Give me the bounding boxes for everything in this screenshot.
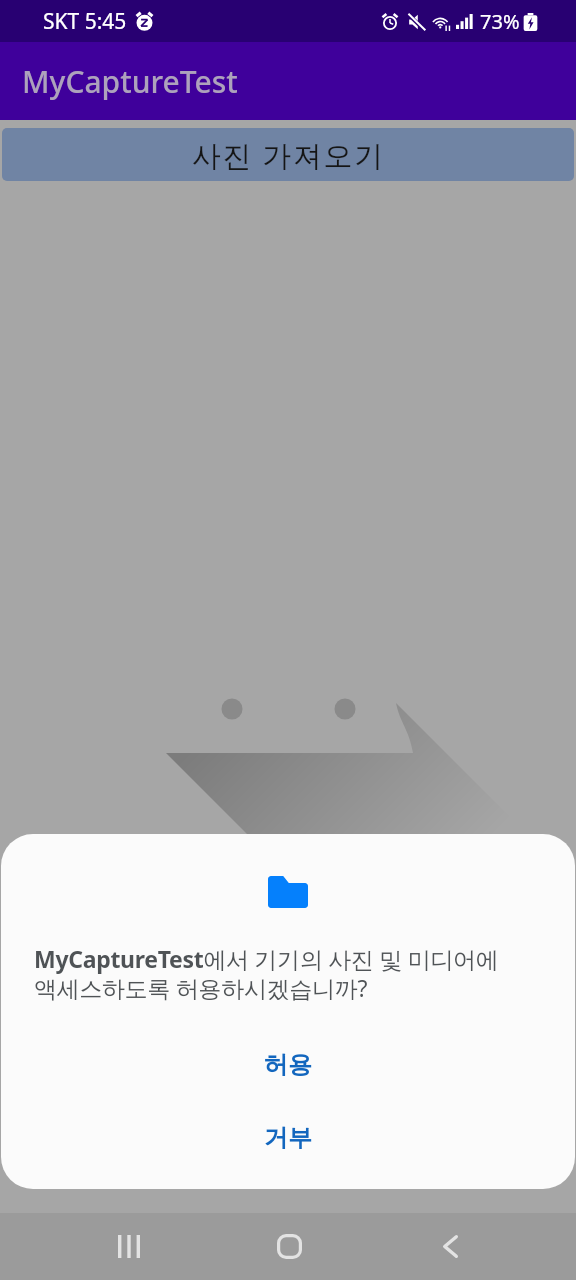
staticText: MyCaptureTest bbox=[22, 61, 238, 102]
button[interactable]: Home bbox=[209, 1213, 370, 1280]
button[interactable]: 거부 bbox=[1, 1118, 575, 1158]
staticText: 거부 bbox=[264, 1123, 312, 1153]
staticText: 허용 bbox=[264, 1050, 312, 1080]
staticText: 사진 가져오기 bbox=[192, 135, 385, 175]
button[interactable]: Recent apps bbox=[49, 1213, 209, 1280]
button[interactable]: 허용 bbox=[1, 1045, 575, 1085]
button[interactable]: 사진 가져오기 bbox=[2, 128, 574, 181]
staticText: MyCaptureTest에서 기기의 사진 및 미디어에 액세스하도록 허용하… bbox=[34, 943, 499, 1004]
button[interactable]: Back bbox=[370, 1213, 531, 1280]
staticText: 73% bbox=[480, 8, 520, 35]
staticText: SKT 5:45 bbox=[43, 7, 127, 36]
